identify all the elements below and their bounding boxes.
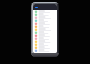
button[interactable] (33, 46, 57, 49)
button[interactable] (33, 31, 57, 34)
button[interactable] (33, 49, 57, 52)
button[interactable] (33, 22, 57, 25)
button[interactable] (33, 19, 57, 22)
button[interactable]: App bar (33, 4, 57, 10)
button[interactable] (33, 16, 57, 19)
button[interactable] (33, 34, 57, 37)
button[interactable] (33, 28, 57, 31)
button[interactable] (33, 40, 57, 43)
button[interactable] (33, 10, 57, 13)
button[interactable] (33, 37, 57, 40)
button[interactable] (33, 25, 57, 28)
button[interactable] (33, 43, 57, 46)
button[interactable] (33, 13, 57, 16)
